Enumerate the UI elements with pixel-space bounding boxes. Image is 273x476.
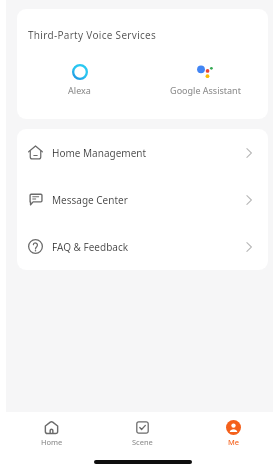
button[interactable]: Google Assistant [142, 64, 268, 96]
button[interactable]: Alexa [17, 64, 142, 96]
button[interactable]: Scene [97, 412, 188, 452]
staticText: Home [41, 437, 63, 447]
button[interactable]: Message Center [17, 176, 268, 223]
button[interactable]: Me [188, 412, 273, 452]
button[interactable]: Home Management [17, 129, 268, 176]
staticText: Google Assistant [170, 84, 241, 96]
button[interactable]: Home [6, 412, 97, 452]
staticText: Message Center [52, 193, 128, 207]
staticText: Home Management [52, 146, 147, 160]
staticText: Alexa [68, 84, 91, 96]
button[interactable]: FAQ & Feedback [17, 223, 268, 270]
staticText: Me [228, 437, 240, 447]
staticText: Third-Party Voice Services [28, 28, 157, 42]
staticText: FAQ & Feedback [52, 240, 129, 254]
staticText: Scene [132, 437, 153, 447]
